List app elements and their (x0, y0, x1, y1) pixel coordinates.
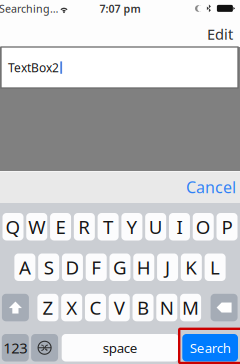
button[interactable]: Search (182, 334, 238, 361)
button[interactable]: S (38, 253, 59, 281)
button[interactable]: D (62, 253, 83, 281)
staticText: Edit (207, 24, 233, 44)
staticText: X (66, 295, 77, 320)
button[interactable]: C (85, 294, 106, 321)
button[interactable]: B (132, 294, 153, 321)
button[interactable]: Edit (201, 18, 239, 50)
staticText: TextBox2 (8, 60, 59, 75)
button[interactable]: F (86, 253, 107, 281)
staticText: M (182, 295, 199, 320)
button[interactable]: K (181, 253, 202, 281)
staticText: G (113, 255, 127, 280)
button[interactable]: R (74, 213, 95, 240)
button[interactable]: Shift (2, 294, 29, 321)
staticText: F (91, 255, 101, 280)
button[interactable]: Z (37, 294, 58, 321)
staticText: Y (126, 214, 137, 239)
button[interactable]: Cancel (180, 171, 240, 203)
button[interactable]: L (205, 253, 226, 281)
button[interactable]: O (193, 213, 214, 240)
button[interactable]: G (109, 253, 130, 281)
staticText: A (19, 255, 31, 280)
button[interactable]: V (109, 294, 130, 321)
button[interactable]: E (50, 213, 71, 240)
staticText: Searching… (0, 2, 58, 16)
staticText: Q (5, 214, 20, 239)
button[interactable]: 123 (2, 334, 29, 361)
staticText: V (114, 295, 125, 320)
button[interactable]: H (133, 253, 154, 281)
staticText: U (149, 214, 163, 239)
staticText: 7:07 pm (99, 2, 140, 16)
button[interactable]: Delete (211, 294, 238, 321)
staticText: P (221, 214, 232, 239)
button[interactable]: X (61, 294, 82, 321)
button[interactable]: Y (121, 213, 142, 240)
button[interactable]: W (26, 213, 47, 240)
staticText: R (78, 214, 90, 239)
staticText: E (55, 214, 65, 239)
button[interactable]: T (98, 213, 119, 240)
button[interactable]: Q (2, 213, 23, 240)
staticText: Cancel (186, 176, 236, 198)
staticText: B (137, 295, 149, 320)
staticText: T (103, 214, 113, 239)
staticText: I (176, 214, 182, 239)
staticText: K (185, 255, 197, 280)
staticText: H (137, 255, 151, 280)
staticText: space (103, 339, 138, 357)
staticText: N (160, 295, 174, 320)
staticText: D (65, 255, 79, 280)
staticText: O (196, 214, 211, 239)
button[interactable]: space (62, 334, 179, 361)
staticText: Z (42, 295, 53, 320)
button[interactable]: P (216, 213, 237, 240)
button[interactable]: M (180, 294, 201, 321)
staticText: Search (190, 339, 231, 357)
button[interactable]: A (14, 253, 35, 281)
staticText: 123 (3, 338, 27, 357)
staticText: L (210, 255, 220, 280)
button[interactable]: Next keyboard (31, 334, 58, 361)
button[interactable]: N (156, 294, 177, 321)
button[interactable]: I (169, 213, 190, 240)
button[interactable]: J (157, 253, 178, 281)
staticText: J (165, 255, 170, 280)
button[interactable]: U (145, 213, 166, 240)
staticText: C (89, 295, 101, 320)
staticText: W (28, 214, 45, 239)
staticText: S (44, 255, 54, 280)
